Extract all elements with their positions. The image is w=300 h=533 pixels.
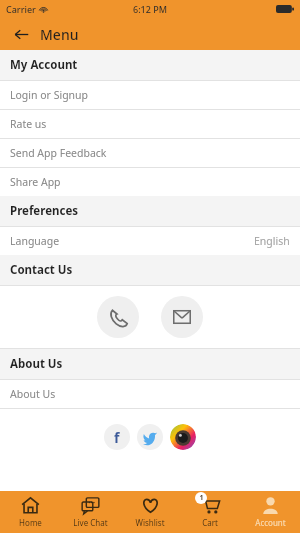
button[interactable]: Share App — [0, 168, 300, 196]
staticText: Account — [255, 517, 286, 528]
staticText: Home — [19, 517, 42, 528]
staticText: English — [254, 234, 290, 248]
staticText: About Us — [10, 387, 56, 401]
staticText: 6:12 PM — [133, 3, 167, 15]
button[interactable]: Live Chat — [60, 491, 120, 533]
button[interactable]: Twitter — [137, 424, 163, 450]
button[interactable]: Home — [0, 491, 60, 533]
button[interactable]: About Us — [0, 380, 300, 408]
staticText: Login or Signup — [10, 88, 89, 102]
staticText: f — [114, 428, 120, 447]
staticText: Language — [10, 234, 60, 248]
button[interactable]: Back — [10, 23, 32, 45]
button[interactable]: Instagram — [170, 424, 196, 450]
button[interactable]: Rate us — [0, 110, 300, 138]
staticText: Carrier — [6, 3, 36, 15]
button[interactable]: Send App Feedback — [0, 139, 300, 167]
button[interactable]: Facebook — [104, 424, 130, 450]
staticText: Rate us — [10, 117, 47, 131]
staticText: About Us — [10, 356, 63, 372]
button[interactable]: Email us — [161, 296, 203, 338]
button[interactable]: 1 — [180, 491, 240, 533]
button[interactable]: Call us — [97, 296, 139, 338]
button[interactable]: Login or Signup — [0, 81, 300, 109]
staticText: Preferences — [10, 203, 79, 219]
staticText: Live Chat — [73, 517, 108, 528]
button[interactable]: Language — [0, 227, 300, 255]
staticText: Cart — [202, 517, 218, 528]
button[interactable]: Wishlist — [120, 491, 180, 533]
staticText: Wishlist — [135, 517, 165, 528]
button[interactable]: Account — [240, 491, 300, 533]
staticText: Menu — [40, 25, 79, 44]
staticText: Share App — [10, 175, 61, 189]
staticText: My Account — [10, 57, 78, 73]
staticText: Send App Feedback — [10, 146, 107, 160]
staticText: 1 — [199, 493, 204, 503]
staticText: Contact Us — [10, 262, 73, 278]
